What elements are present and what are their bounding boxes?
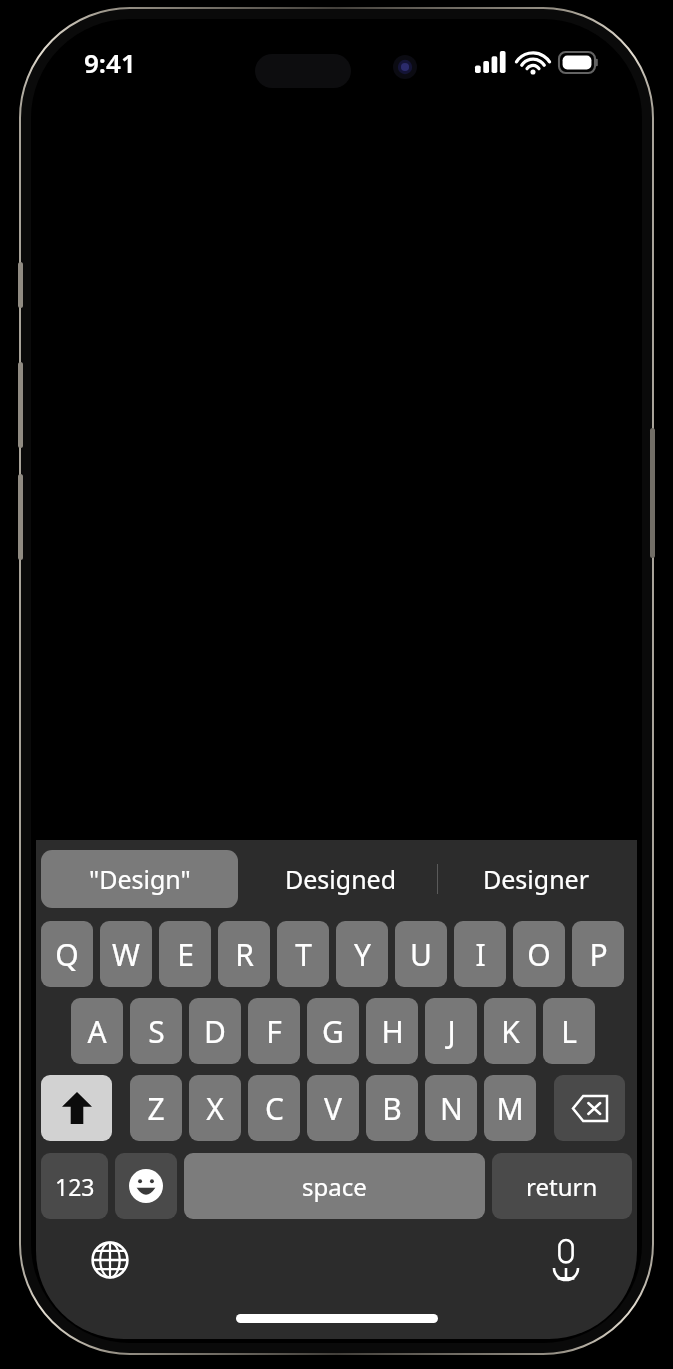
button[interactable]: L [543, 998, 595, 1064]
button[interactable]: A [71, 998, 123, 1064]
staticText: K [501, 1011, 520, 1052]
staticText: H [381, 1011, 404, 1052]
staticText: Q [55, 934, 79, 975]
button[interactable]: return [492, 1153, 632, 1219]
button[interactable]: V [307, 1075, 359, 1141]
staticText: "Design" [89, 862, 191, 896]
staticText: Designer [483, 862, 590, 896]
staticText: X [206, 1088, 224, 1129]
staticText: W [112, 934, 140, 975]
staticText: D [204, 1011, 226, 1052]
staticText: R [235, 934, 254, 975]
button[interactable]: U [395, 921, 447, 987]
staticText: Z [147, 1088, 165, 1129]
staticText: S [148, 1011, 165, 1052]
button[interactable]: Designed [243, 850, 438, 908]
button[interactable]: X [189, 1075, 241, 1141]
staticText: 123 [55, 1171, 95, 1202]
button[interactable]: O [513, 921, 565, 987]
staticText: T [295, 934, 312, 975]
staticText: L [561, 1011, 577, 1052]
staticText: space [302, 1170, 367, 1203]
button[interactable]: E [159, 921, 211, 987]
button[interactable]: G [307, 998, 359, 1064]
staticText: B [382, 1088, 402, 1129]
button[interactable]: 123 [41, 1153, 108, 1219]
button[interactable]: S [130, 998, 182, 1064]
button[interactable]: F [248, 998, 300, 1064]
staticText: M [496, 1088, 524, 1129]
button[interactable]: P [572, 921, 624, 987]
button[interactable]: Delete [554, 1075, 625, 1141]
button[interactable]: R [218, 921, 270, 987]
staticText: 9:41 [84, 45, 136, 80]
button[interactable]: Y [336, 921, 388, 987]
button[interactable]: B [366, 1075, 418, 1141]
button[interactable]: Switch keyboard language [79, 1229, 141, 1291]
button[interactable]: Dictate [535, 1229, 597, 1291]
button[interactable]: M [484, 1075, 536, 1141]
staticText: I [475, 934, 486, 975]
button[interactable]: H [366, 998, 418, 1064]
staticText: return [526, 1170, 598, 1203]
staticText: J [447, 1011, 456, 1052]
button[interactable]: T [277, 921, 329, 987]
staticText: F [266, 1011, 282, 1052]
button[interactable]: Z [130, 1075, 182, 1141]
button[interactable]: K [484, 998, 536, 1064]
staticText: Y [354, 934, 371, 975]
staticText: G [322, 1011, 344, 1052]
button[interactable]: Q [41, 921, 93, 987]
button[interactable]: I [454, 921, 506, 987]
button[interactable]: Shift [41, 1075, 112, 1141]
staticText: P [589, 934, 608, 975]
staticText: Designed [285, 862, 397, 896]
staticText: N [440, 1088, 463, 1129]
staticText: V [324, 1088, 342, 1129]
button[interactable]: Designer [440, 850, 632, 908]
staticText: E [177, 934, 194, 975]
button[interactable]: Emoji [115, 1153, 177, 1219]
button[interactable]: "Design" [41, 850, 238, 908]
button[interactable]: W [100, 921, 152, 987]
button[interactable]: J [425, 998, 477, 1064]
staticText: A [87, 1011, 107, 1052]
button[interactable]: space [184, 1153, 485, 1219]
button[interactable]: N [425, 1075, 477, 1141]
button[interactable]: C [248, 1075, 300, 1141]
button[interactable]: D [189, 998, 241, 1064]
staticText: U [410, 934, 432, 975]
staticText: O [527, 934, 551, 975]
staticText: C [265, 1088, 284, 1129]
